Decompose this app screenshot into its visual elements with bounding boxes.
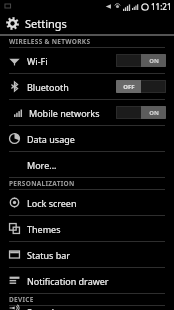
staticText: Bluetooth: [27, 81, 69, 93]
other: Settings: [6, 17, 19, 30]
button[interactable]: Mobile networks: [0, 100, 174, 125]
button[interactable]: Sound: [0, 306, 174, 310]
button[interactable]: Switch on: [116, 54, 166, 67]
staticText: WIRELESS & NETWORKS: [9, 37, 91, 46]
button[interactable]: More...: [0, 152, 174, 177]
button[interactable]: Switch on: [116, 106, 166, 119]
staticText: Settings: [25, 16, 67, 31]
staticText: Data usage: [27, 133, 75, 145]
staticText: Lock screen: [27, 197, 77, 209]
staticText: Themes: [27, 223, 61, 235]
staticText: ON: [149, 57, 159, 65]
staticText: OFF: [123, 83, 135, 91]
staticText: 11:21: [151, 1, 172, 12]
button[interactable]: Themes: [0, 216, 174, 241]
button[interactable]: Switch off: [116, 80, 166, 93]
staticText: Wi-Fi: [27, 55, 48, 67]
staticText: Status bar: [27, 249, 71, 261]
staticText: ON: [149, 109, 159, 117]
staticText: Mobile networks: [29, 107, 100, 119]
button[interactable]: Wi-Fi: [0, 48, 174, 73]
button[interactable]: Bluetooth: [0, 74, 174, 99]
staticText: PERSONALIZATION: [9, 179, 75, 188]
staticText: Sound: [27, 306, 55, 310]
button[interactable]: Lock screen: [0, 190, 174, 215]
button[interactable]: Notification drawer: [0, 268, 174, 293]
button[interactable]: Data usage: [0, 126, 174, 151]
staticText: Notification drawer: [27, 275, 109, 287]
button[interactable]: Status bar: [0, 242, 174, 267]
staticText: DEVICE: [9, 295, 34, 304]
staticText: More...: [27, 159, 57, 171]
